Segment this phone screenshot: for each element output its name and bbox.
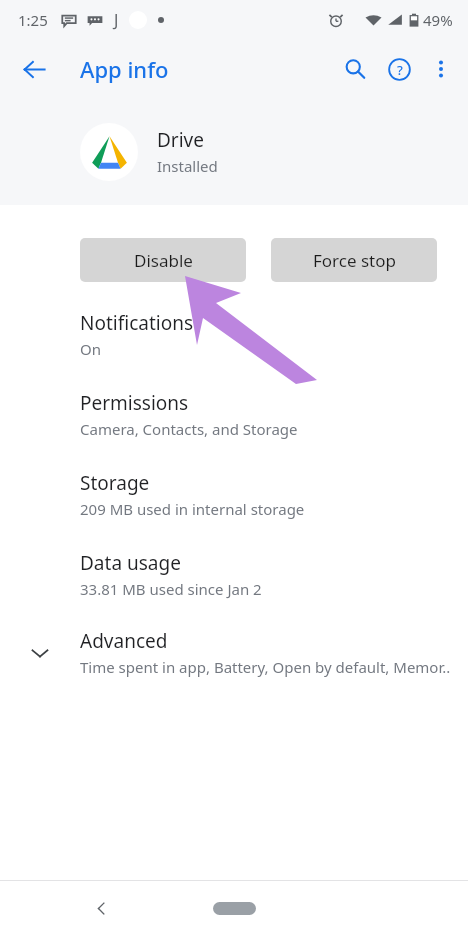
staticText: Disable	[134, 249, 193, 272]
staticText: Force stop	[313, 249, 396, 272]
button[interactable]: Back	[79, 886, 123, 930]
staticText: 49%	[423, 10, 453, 30]
button[interactable]: Storage	[0, 470, 468, 519]
button[interactable]: Home	[205, 893, 263, 923]
staticText: App info	[80, 54, 169, 84]
button[interactable]: More options	[421, 49, 461, 89]
staticText: Installed	[157, 156, 218, 176]
button[interactable]: Advanced	[0, 628, 468, 677]
staticText: Storage	[80, 470, 150, 496]
staticText: Data usage	[80, 550, 181, 576]
button[interactable]: Permissions	[0, 390, 468, 439]
staticText: Camera, Contacts, and Storage	[80, 419, 298, 439]
button[interactable]: Notifications	[0, 310, 468, 359]
button[interactable]: Data usage	[0, 550, 468, 599]
staticText: 1:25	[18, 10, 48, 30]
staticText: Time spent in app, Battery, Open by defa…	[80, 657, 451, 677]
staticText: Notifications	[80, 310, 194, 336]
staticText: Advanced	[80, 628, 168, 654]
staticText: Permissions	[80, 390, 189, 416]
button[interactable]: Search	[333, 47, 377, 91]
button[interactable]: Force stop	[271, 238, 437, 282]
button[interactable]: Disable	[80, 238, 246, 282]
staticText: 33.81 MB used since Jan 2	[80, 579, 262, 599]
staticText: ?	[397, 61, 403, 79]
staticText: 209 MB used in internal storage	[80, 499, 305, 519]
staticText: On	[80, 339, 101, 359]
staticText: J	[114, 9, 119, 31]
button[interactable]: Drive	[0, 98, 468, 205]
button[interactable]: Back	[12, 47, 56, 91]
staticText: Drive	[157, 127, 204, 153]
button[interactable]: Help	[377, 47, 421, 91]
